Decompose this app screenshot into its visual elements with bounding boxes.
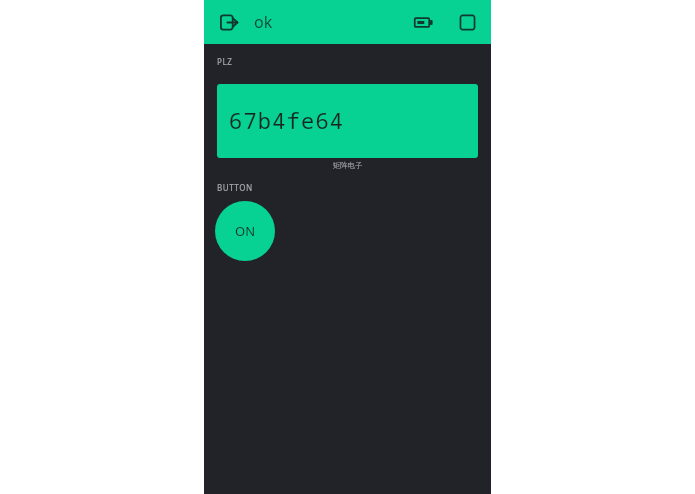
staticText: 67b4fe64 <box>229 105 345 135</box>
staticText: 矩阵电子 <box>204 161 491 170</box>
staticText: ON <box>235 222 256 240</box>
button[interactable]: Battery status <box>408 7 438 37</box>
button[interactable]: 67b4fe64 <box>217 84 478 158</box>
staticText: PLZ <box>217 56 233 67</box>
button[interactable]: ON <box>215 201 275 261</box>
staticText: BUTTON <box>217 182 253 193</box>
button[interactable]: Stop <box>452 7 482 37</box>
staticText: ok <box>254 11 273 33</box>
button[interactable]: Connect <box>213 7 243 37</box>
